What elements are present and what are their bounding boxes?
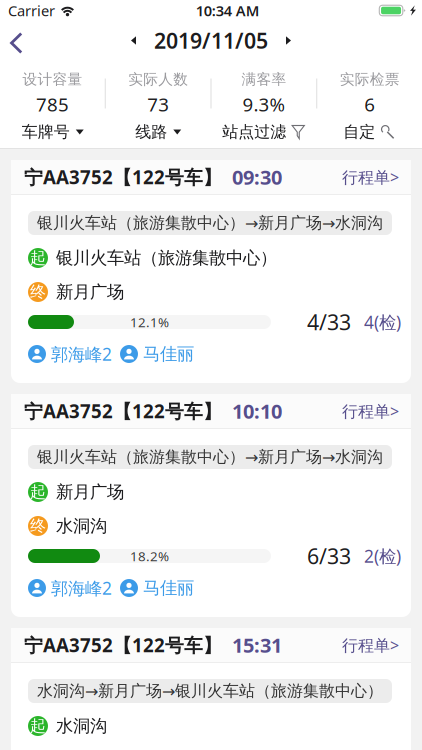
button[interactable]: Back <box>0 21 39 60</box>
staticText: 终 <box>30 516 46 536</box>
staticText: 6/33 <box>307 541 351 571</box>
button[interactable]: 郭海峰2 <box>28 578 112 598</box>
staticText: 2(检) <box>364 544 401 568</box>
staticText: 银川火车站（旅游集散中心）→新月广场→水洞沟 <box>37 447 383 467</box>
staticText: 宁AA3752【122号车】 <box>24 398 222 424</box>
staticText: 09:30 <box>232 163 282 191</box>
button[interactable]: 马佳丽 <box>120 344 194 364</box>
staticText: 新月广场 <box>56 481 124 503</box>
button[interactable]: 宁AA3752【122号车】 <box>11 160 411 194</box>
staticText: 终 <box>30 282 46 302</box>
staticText: 郭海峰2 <box>51 342 112 366</box>
staticText: 起 <box>30 482 46 502</box>
staticText: 4/33 <box>307 307 351 337</box>
staticText: 行程单> <box>342 634 399 656</box>
staticText: 起 <box>30 248 46 268</box>
button[interactable]: 郭海峰2 <box>28 344 112 364</box>
button[interactable]: 站点过滤 <box>211 114 316 150</box>
button[interactable]: 自定 <box>316 114 422 150</box>
staticText: 银川火车站（旅游集散中心）→新月广场→水洞沟 <box>37 213 383 233</box>
staticText: 行程单> <box>342 400 399 422</box>
staticText: 满客率 <box>241 70 286 88</box>
staticText: 10:34 AM <box>196 0 260 20</box>
staticText: 宁AA3752【122号车】 <box>24 164 222 190</box>
staticText: 自定 <box>343 122 375 142</box>
staticText: 6 <box>364 91 375 117</box>
button[interactable]: 宁AA3752【122号车】 <box>11 628 411 662</box>
staticText: 新月广场 <box>56 281 124 303</box>
staticText: 9.3% <box>242 91 285 117</box>
button[interactable]: 线路 <box>105 114 211 150</box>
staticText: 10:10 <box>232 397 282 425</box>
staticText: 站点过滤 <box>222 122 286 142</box>
staticText: 水洞沟 <box>56 715 107 737</box>
staticText: 2019/11/05 <box>154 26 268 55</box>
staticText: 实际检票 <box>340 70 400 88</box>
staticText: 73 <box>147 91 169 117</box>
staticText: 设计容量 <box>22 70 82 88</box>
staticText: 实际人数 <box>128 70 188 88</box>
staticText: 宁AA3752【122号车】 <box>24 632 222 658</box>
staticText: 15:31 <box>232 631 282 659</box>
staticText: 12.1% <box>130 313 169 331</box>
button[interactable]: 马佳丽 <box>120 578 194 598</box>
staticText: 线路 <box>135 122 167 142</box>
staticText: 起 <box>30 716 46 736</box>
staticText: 4(检) <box>364 310 401 334</box>
staticText: 马佳丽 <box>143 577 194 599</box>
staticText: 水洞沟→新月广场→银川火车站（旅游集散中心） <box>37 681 383 701</box>
button[interactable]: 宁AA3752【122号车】 <box>11 394 411 428</box>
button[interactable]: 车牌号 <box>0 114 105 150</box>
staticText: 水洞沟 <box>56 515 107 537</box>
staticText: 银川火车站（旅游集散中心） <box>56 247 277 269</box>
staticText: 郭海峰2 <box>51 576 112 600</box>
button[interactable]: Previous day <box>121 24 145 56</box>
staticText: 马佳丽 <box>143 343 194 365</box>
button[interactable]: Next day <box>277 24 301 56</box>
staticText: 行程单> <box>342 166 399 188</box>
staticText: 785 <box>36 91 69 117</box>
staticText: 18.2% <box>130 547 169 565</box>
staticText: Carrier <box>8 0 55 20</box>
staticText: 车牌号 <box>22 122 70 142</box>
